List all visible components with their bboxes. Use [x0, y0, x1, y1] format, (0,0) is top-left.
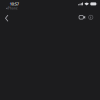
staticText: 10:57 — [10, 1, 19, 7]
button[interactable]: Info — [86, 12, 96, 23]
button[interactable]: Back to Phone — [6, 7, 18, 10]
button[interactable]: FaceTime video call — [76, 12, 86, 23]
staticText: Phone — [8, 7, 18, 10]
button[interactable]: Back — [1, 13, 13, 24]
